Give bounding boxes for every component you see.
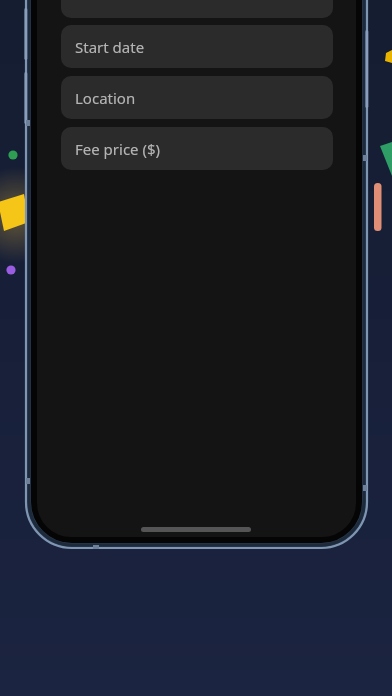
staticText: Fee price ($) bbox=[75, 139, 161, 159]
staticText: Location bbox=[75, 88, 136, 108]
staticText: Start date bbox=[75, 37, 145, 57]
button[interactable]: Start date bbox=[61, 25, 333, 68]
button[interactable]: Fee price ($) bbox=[61, 127, 333, 170]
button[interactable]: Location bbox=[61, 76, 333, 119]
